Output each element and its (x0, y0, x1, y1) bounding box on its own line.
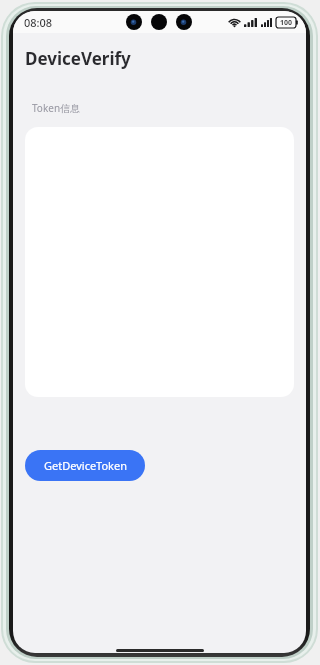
staticText: 08:08 (24, 15, 53, 30)
staticText: GetDeviceToken (44, 458, 127, 473)
staticText: Token信息 (32, 101, 81, 115)
staticText: 100 (280, 18, 293, 28)
staticText: DeviceVerify (25, 47, 131, 70)
button[interactable]: GetDeviceToken (25, 450, 145, 481)
